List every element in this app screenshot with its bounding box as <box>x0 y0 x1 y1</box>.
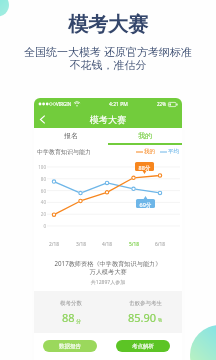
staticText: 万人模考大赛 <box>34 268 182 276</box>
staticText: 模考大赛 <box>90 114 126 125</box>
staticText: 60 <box>34 188 46 194</box>
button[interactable]: 数据报告 <box>43 340 97 352</box>
staticText: 22% <box>157 101 166 107</box>
staticText: 69分 <box>136 201 155 209</box>
staticText: 2017教师资格《中学教育知识与能力》 <box>34 259 182 267</box>
staticText: 不花钱，准估分 <box>0 58 216 72</box>
staticText: 平均 <box>168 148 179 155</box>
staticText: 2/18 <box>44 241 64 248</box>
staticText: 5/18 <box>124 241 144 248</box>
staticText: 20 <box>34 211 46 217</box>
staticText: 4:21 PM <box>109 101 128 108</box>
staticText: 88 <box>62 310 75 325</box>
staticText: 击败参与考生 <box>129 300 162 307</box>
staticText: % <box>158 317 163 324</box>
button[interactable]: Back <box>34 110 50 128</box>
staticText: 全国统一大模考 还原官方考纲标准 <box>0 44 216 59</box>
staticText: 我的 <box>144 148 155 155</box>
staticText: 88分 <box>135 164 154 172</box>
button[interactable]: 我的 <box>108 128 182 145</box>
button[interactable]: 考点解析 <box>116 340 170 352</box>
staticText: 我的 <box>138 131 152 140</box>
staticText: 报名 <box>64 131 78 140</box>
staticText: 考点解析 <box>132 343 154 350</box>
staticText: 40 <box>34 199 46 205</box>
staticText: 85.90 <box>128 310 157 325</box>
staticText: 中学教育知识与能力 <box>37 148 91 156</box>
staticText: 模考大赛 <box>0 12 216 37</box>
staticText: 数据报告 <box>59 343 81 350</box>
staticText: 100 <box>34 164 46 170</box>
staticText: 0 <box>34 223 46 229</box>
staticText: 80 <box>34 176 46 182</box>
staticText: 3/18 <box>71 241 91 248</box>
staticText: VIRGIN <box>56 101 72 107</box>
staticText: 分 <box>76 318 81 324</box>
staticText: 模考分数 <box>60 300 82 307</box>
button[interactable]: 报名 <box>34 128 108 145</box>
staticText: 共12897人参加 <box>34 279 182 286</box>
staticText: 6/18 <box>150 241 170 248</box>
staticText: 4/18 <box>97 241 117 248</box>
